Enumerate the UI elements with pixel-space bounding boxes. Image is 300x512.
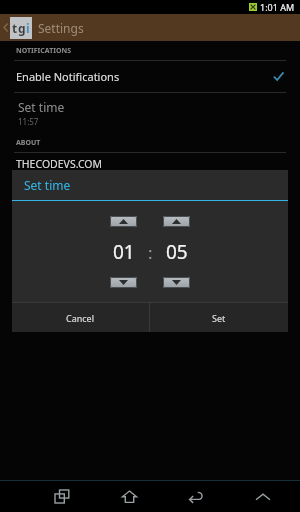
button[interactable]: Back	[179, 481, 213, 512]
staticText: Set time	[24, 177, 71, 193]
staticText: NOTIFICATIONS	[16, 46, 72, 56]
button[interactable]: THECODEVS.COM	[0, 153, 300, 186]
staticText: i	[26, 20, 30, 36]
staticText: Cancel	[66, 312, 95, 324]
staticText: 01	[113, 239, 135, 265]
button[interactable]: Navigate up	[0, 14, 32, 41]
button[interactable]: Home	[112, 481, 146, 512]
staticText: 05	[166, 239, 188, 265]
staticText: Settings	[38, 20, 84, 36]
button[interactable]: Increment	[110, 216, 137, 227]
staticText: THECODEVS.COM	[16, 157, 103, 171]
button[interactable]: Show menu	[246, 481, 280, 512]
staticText: Enable Notifications	[16, 69, 120, 84]
button[interactable]: Set	[150, 303, 288, 332]
button[interactable]: Cancel	[12, 303, 149, 332]
staticText: Set time	[18, 99, 65, 115]
staticText: :	[148, 241, 153, 264]
button[interactable]: Set time	[0, 93, 300, 133]
staticText: Visit our website	[16, 172, 75, 182]
button[interactable]: Decrement	[110, 277, 137, 288]
button[interactable]: Increment	[163, 216, 190, 227]
staticText: g	[18, 20, 26, 36]
staticText: t	[12, 20, 18, 36]
button[interactable]: Decrement	[163, 277, 190, 288]
staticText: 11:57	[18, 116, 39, 127]
button[interactable]: Recent apps	[45, 481, 79, 512]
staticText: ABOUT	[16, 138, 41, 148]
staticText: 1:01 AM	[260, 1, 295, 13]
button[interactable]: Enable Notifications	[0, 61, 300, 92]
staticText: Set	[212, 312, 226, 324]
